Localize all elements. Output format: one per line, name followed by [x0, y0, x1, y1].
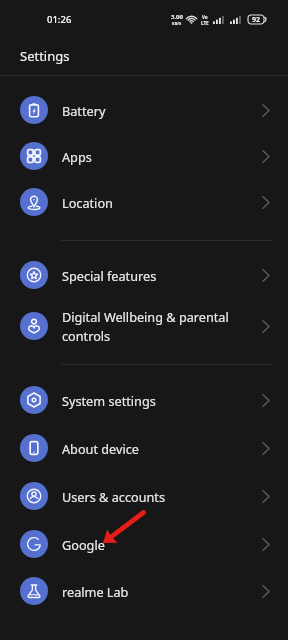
button[interactable]: About device — [0, 425, 288, 471]
staticText: Vo — [202, 14, 208, 20]
staticText: Digital Wellbeing & parental controls — [62, 308, 240, 345]
staticText: realme Lab — [62, 583, 240, 600]
button[interactable]: Google — [0, 521, 288, 567]
button[interactable]: Battery — [0, 87, 288, 133]
staticText: Users & accounts — [62, 488, 240, 505]
button[interactable]: Location — [0, 179, 288, 225]
staticText: 3.00 — [171, 13, 183, 21]
staticText: About device — [62, 440, 240, 457]
staticText: LTE — [201, 20, 209, 26]
staticText: Google — [62, 536, 240, 553]
button[interactable]: Apps — [0, 133, 288, 179]
staticText: Settings — [20, 47, 70, 65]
staticText: Apps — [62, 148, 240, 165]
button[interactable]: Digital Wellbeing & parental controls — [0, 303, 288, 349]
staticText: Special features — [62, 267, 240, 284]
button[interactable]: System settings — [0, 377, 288, 423]
staticText: Location — [62, 194, 240, 211]
staticText: KB/S — [172, 21, 182, 26]
button[interactable]: Special features — [0, 252, 288, 298]
button[interactable]: Users & accounts — [0, 473, 288, 519]
staticText: 92 — [252, 15, 261, 24]
staticText: System settings — [62, 392, 240, 409]
staticText: Battery — [62, 102, 240, 119]
button[interactable]: realme Lab — [0, 568, 288, 614]
staticText: 01:26 — [47, 13, 72, 26]
